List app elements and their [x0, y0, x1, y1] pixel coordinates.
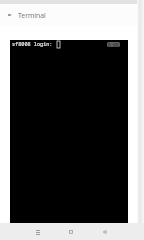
- staticText: 0:00: [108, 42, 119, 47]
- button[interactable]: 0:00: [107, 42, 120, 47]
- button[interactable]: sf8008 login:: [10, 40, 128, 223]
- button[interactable]: Recent apps: [30, 223, 46, 240]
- button[interactable]: Home: [63, 223, 79, 240]
- staticText: sf8008 login:: [12, 40, 53, 47]
- staticText: Terminal: [18, 11, 46, 20]
- button[interactable]: Back: [0, 4, 18, 26]
- button[interactable]: Back: [96, 223, 112, 240]
